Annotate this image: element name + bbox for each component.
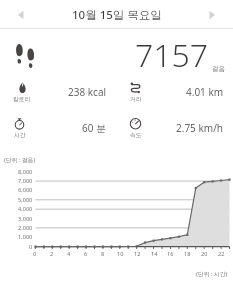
staticText: 2,000 — [18, 224, 33, 232]
button[interactable]: 10월 15일 목요일 — [72, 7, 162, 23]
staticText: 12 — [134, 250, 141, 258]
button[interactable]: Steps — [0, 29, 233, 81]
staticText: (단위 : 걸음) — [4, 156, 36, 164]
staticText: 8 — [101, 250, 105, 258]
staticText: 22 — [218, 250, 225, 258]
staticText: 1,000 — [18, 233, 33, 241]
staticText: 60 분 — [82, 121, 107, 135]
staticText: 10월 15일 목요일 — [72, 7, 162, 23]
other: Steps — [13, 42, 40, 69]
staticText: 16 — [167, 250, 174, 258]
staticText: 14 — [151, 250, 158, 258]
staticText: 속도 — [130, 131, 142, 138]
staticText: 0 — [33, 250, 37, 258]
staticText: 6,000 — [18, 186, 33, 194]
staticText: 4,000 — [18, 205, 33, 213]
staticText: 238 kcal — [68, 85, 107, 99]
staticText: 칼로리 — [13, 95, 31, 102]
staticText: 3,000 — [18, 215, 33, 223]
button[interactable]: 거리 — [116, 81, 233, 102]
staticText: 2 — [50, 250, 54, 258]
button[interactable]: Next day — [199, 2, 225, 28]
staticText: 거리 — [130, 95, 142, 102]
staticText: 걸음 — [212, 65, 225, 73]
staticText: 7,000 — [18, 177, 33, 185]
button[interactable]: 칼로리 — [0, 81, 116, 102]
staticText: 7157 — [135, 33, 209, 77]
staticText: 10 — [117, 250, 124, 258]
button[interactable]: Previous day — [8, 2, 34, 28]
staticText: 0 — [29, 243, 33, 251]
button[interactable]: 시간 — [0, 117, 116, 138]
staticText: 6 — [84, 250, 88, 258]
staticText: 8,000 — [18, 168, 33, 176]
staticText: 4.01 km — [186, 85, 224, 99]
staticText: 시간 — [14, 131, 26, 138]
staticText: 5,000 — [18, 196, 33, 204]
button[interactable]: 속도 — [116, 117, 233, 138]
staticText: 2.75 km/h — [176, 121, 224, 135]
staticText: 4 — [67, 250, 71, 258]
staticText: 18 — [184, 250, 191, 258]
staticText: (단위 : 시간) — [196, 270, 228, 278]
staticText: 20 — [201, 250, 208, 258]
